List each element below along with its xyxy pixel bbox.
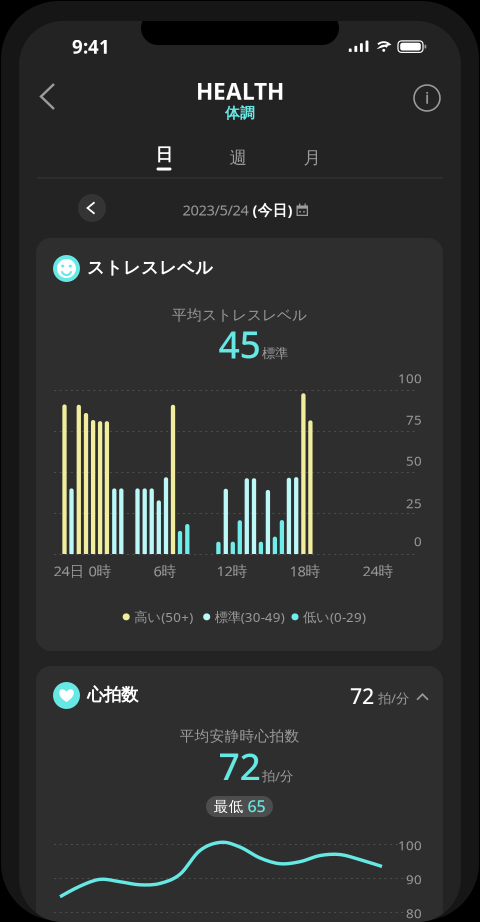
staticText: 24日 0時 xyxy=(53,561,111,580)
button[interactable]: 週 xyxy=(202,134,274,191)
staticText: 標準(30-49) xyxy=(215,608,285,626)
staticText: 拍/分 xyxy=(378,689,409,707)
staticText: 100 xyxy=(398,369,422,387)
staticText: 18時 xyxy=(289,561,320,580)
staticText: 50 xyxy=(406,452,422,469)
staticText: 0 xyxy=(414,532,422,550)
staticText: (今日) xyxy=(252,200,292,219)
staticText: 低い(0-29) xyxy=(303,608,366,626)
staticText: 心拍数 xyxy=(87,684,138,705)
staticText: 2023/5/24 xyxy=(182,200,248,219)
staticText: 45 xyxy=(218,319,260,369)
staticText: 日 xyxy=(155,144,172,165)
button[interactable]: Information xyxy=(405,76,449,120)
staticText: 最低 xyxy=(213,797,243,815)
staticText: 高い(50+) xyxy=(134,608,193,626)
staticText: 9:41 xyxy=(72,34,110,59)
button[interactable]: Previous day xyxy=(70,186,114,230)
button[interactable]: 日 xyxy=(128,134,200,178)
staticText: ストレスレベル xyxy=(87,257,213,278)
staticText: 体調 xyxy=(225,104,255,122)
staticText: 80 xyxy=(406,904,422,922)
staticText: 65 xyxy=(247,795,265,817)
staticText: 72 xyxy=(218,741,260,791)
staticText: 72 xyxy=(350,682,374,710)
staticText: 25 xyxy=(406,494,422,512)
staticText: 24時 xyxy=(362,561,393,580)
button[interactable]: 月 xyxy=(276,134,348,191)
button[interactable]: Back xyxy=(28,71,67,122)
staticText: i xyxy=(425,87,429,108)
staticText: HEALTH xyxy=(196,76,284,106)
staticText: 平均安静時心拍数 xyxy=(179,727,299,745)
staticText: 75 xyxy=(406,411,422,428)
staticText: 6時 xyxy=(153,561,176,580)
staticText: 平均ストレスレベル xyxy=(172,306,307,324)
button[interactable]: 2023/5/24 xyxy=(176,193,314,226)
staticText: 90 xyxy=(406,870,422,888)
staticText: 12時 xyxy=(216,561,247,580)
staticText: 100 xyxy=(398,836,422,854)
button[interactable]: 72 xyxy=(344,682,430,710)
staticText: 月 xyxy=(303,147,320,168)
staticText: 標準 xyxy=(262,345,288,361)
staticText: 拍/分 xyxy=(262,767,293,785)
staticText: 週 xyxy=(229,147,246,168)
